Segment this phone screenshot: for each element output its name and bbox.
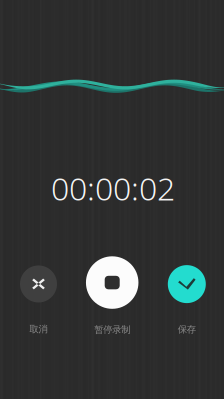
staticText: 保存: [178, 324, 196, 335]
staticText: 暂停录制: [94, 324, 130, 335]
button[interactable]: 取消: [13, 265, 63, 335]
button[interactable]: 暂停录制: [82, 256, 142, 335]
button[interactable]: 保存: [162, 265, 212, 335]
staticText: 取消: [29, 323, 47, 335]
staticText: 00:00:02: [51, 167, 175, 209]
